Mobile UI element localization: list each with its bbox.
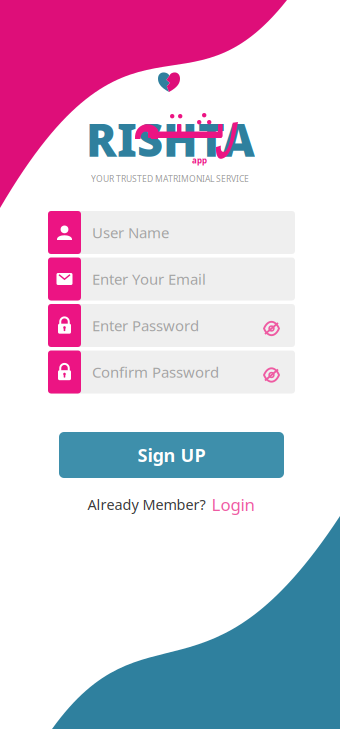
staticText: Sign UP [137, 443, 205, 467]
staticText: Enter Your Email [92, 269, 206, 289]
staticText: YOUR TRUSTED MATRIMONIAL SERVICE [91, 173, 249, 185]
button[interactable]: Confirm Password [48, 350, 295, 393]
staticText: Enter Password [92, 315, 199, 336]
staticText: Login [211, 493, 254, 516]
staticText: Confirm Password [92, 362, 219, 382]
staticText: RISHTA [86, 109, 255, 169]
staticText: app [192, 155, 207, 166]
staticText: Already Member? [87, 495, 205, 514]
button[interactable]: User Name [48, 211, 295, 254]
button[interactable]: Sign UP [59, 432, 284, 478]
button[interactable]: Login [211, 493, 254, 516]
button[interactable]: Enter Your Email [48, 257, 295, 300]
staticText: User Name [92, 222, 169, 243]
button[interactable]: Enter Password [48, 304, 295, 347]
